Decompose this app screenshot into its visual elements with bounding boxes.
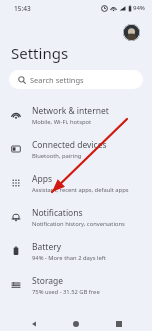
staticText: Connected devices xyxy=(32,139,107,151)
staticText: Battery xyxy=(32,241,62,253)
staticText: Notifications xyxy=(32,207,83,219)
staticText: Apps xyxy=(32,173,52,185)
button[interactable]: Account avatar xyxy=(123,24,140,41)
button[interactable]: Battery xyxy=(0,234,152,268)
staticText: 15:43 xyxy=(14,4,31,13)
button[interactable]: Search settings xyxy=(9,70,143,89)
button[interactable]: Network & internet xyxy=(0,98,152,132)
staticText: Assistant, recent apps, default apps xyxy=(32,186,129,194)
staticText: Search settings xyxy=(30,75,84,85)
staticText: Storage xyxy=(32,275,64,287)
staticText: Notification history, conversations xyxy=(32,220,125,228)
button[interactable]: Apps xyxy=(0,166,152,200)
staticText: Mobile, Wi-Fi, hotspot xyxy=(32,118,92,126)
staticText: Bluetooth, pairing xyxy=(32,152,82,160)
staticText: 94% xyxy=(133,4,145,12)
button[interactable]: Notifications xyxy=(0,200,152,234)
button[interactable]: Storage xyxy=(0,268,152,302)
staticText: Network & internet xyxy=(32,105,109,117)
staticText: 75% used - 31.52 GB free xyxy=(32,288,100,296)
staticText: Settings xyxy=(11,43,69,63)
button[interactable]: Connected devices xyxy=(0,132,152,166)
button[interactable]: Recent apps xyxy=(110,316,128,331)
staticText: 94% - More than 2 days left xyxy=(32,254,106,262)
button[interactable]: Home xyxy=(67,316,85,331)
button[interactable]: Back xyxy=(25,316,43,331)
